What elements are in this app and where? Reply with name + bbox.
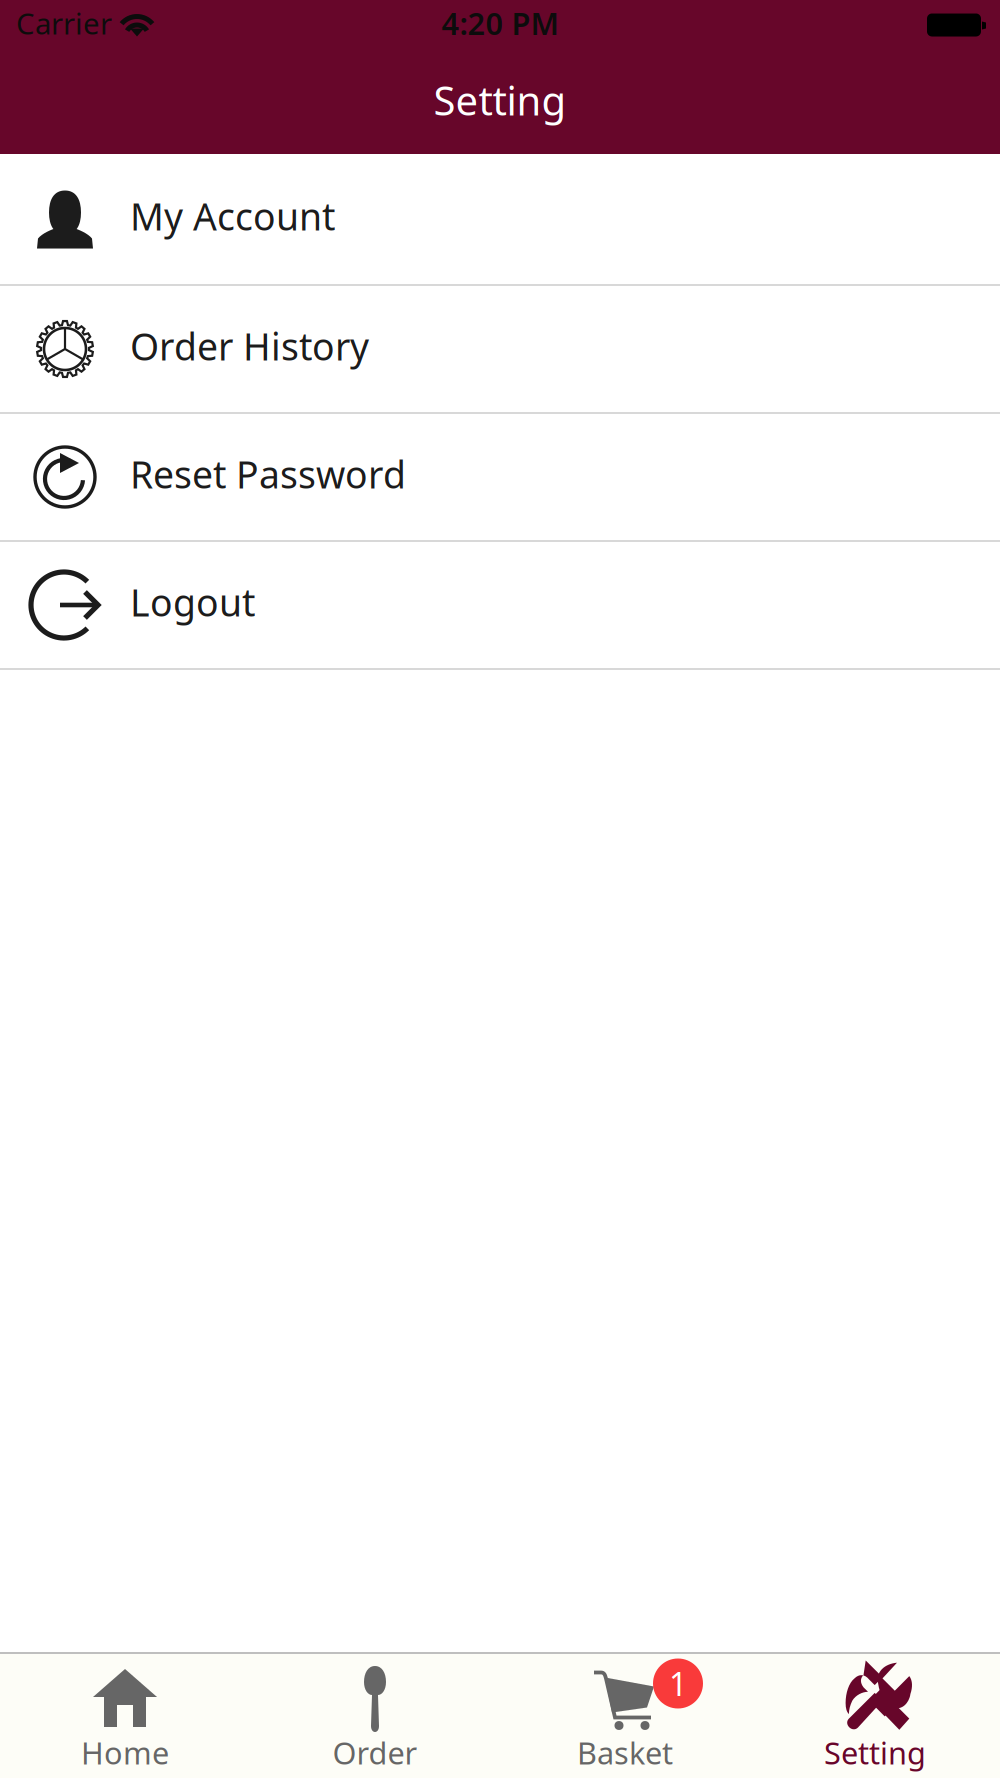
button[interactable]: Reset Password [0,414,1000,542]
staticText: Order History [130,321,369,371]
staticText: Home [81,1732,169,1773]
staticText: Order [332,1732,417,1773]
staticText: 4:20 PM [441,3,558,43]
button[interactable]: Setting [750,1654,1000,1778]
button[interactable]: Order [250,1654,500,1778]
button[interactable]: Order History [0,286,1000,414]
button[interactable]: Home [0,1654,250,1778]
staticText: Setting [433,73,566,126]
staticText: 1 [669,1662,687,1705]
button[interactable]: Logout [0,542,1000,670]
staticText: Logout [130,577,255,627]
staticText: Setting [824,1732,926,1773]
staticText: Reset Password [130,449,406,499]
button[interactable]: 1 [500,1654,750,1778]
button[interactable]: My Account [0,154,1000,286]
staticText: My Account [130,191,335,241]
staticText: Basket [577,1732,673,1773]
staticText: Carrier [16,3,112,42]
